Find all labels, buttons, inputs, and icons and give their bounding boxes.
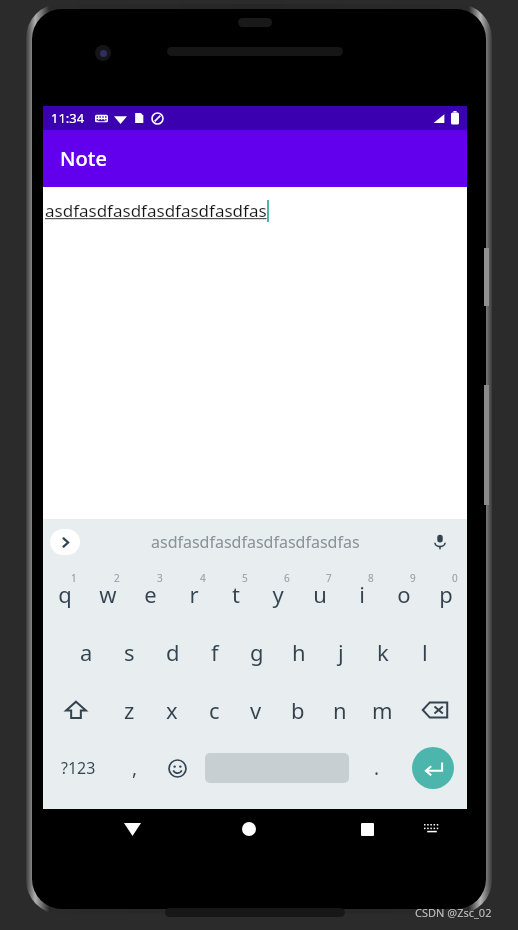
staticText: b (291, 695, 305, 725)
button[interactable]: h (278, 623, 320, 681)
button[interactable]: ?123 (43, 739, 113, 797)
button[interactable]: v (235, 681, 277, 739)
button[interactable]: b (277, 681, 319, 739)
staticText: k (377, 637, 389, 667)
staticText: 9 (410, 571, 416, 585)
button[interactable]: q (43, 565, 86, 623)
staticText: 4 (200, 571, 206, 585)
staticText: 8 (368, 571, 374, 585)
button[interactable]: Emoji (156, 739, 199, 797)
button[interactable]: Switch keyboard (417, 814, 447, 844)
staticText: s (124, 637, 135, 667)
button[interactable]: Expand suggestions (50, 529, 80, 555)
staticText: h (292, 637, 306, 667)
button[interactable]: g (236, 623, 278, 681)
staticText: g (250, 637, 264, 667)
staticText: c (209, 695, 220, 725)
button[interactable]: asdfasdfasdfasdfasdfasdfas (151, 531, 360, 553)
staticText: x (166, 695, 178, 725)
button[interactable]: o (383, 565, 425, 623)
staticText: 3 (157, 571, 163, 585)
button[interactable]: a (65, 623, 108, 681)
button[interactable]: Hide keyboard (115, 812, 149, 846)
staticText: r (189, 579, 199, 609)
button[interactable]: w (86, 565, 129, 623)
button[interactable]: p (425, 565, 467, 623)
staticText: t (232, 579, 240, 609)
staticText: z (124, 695, 135, 725)
staticText: 6 (284, 571, 290, 585)
staticText: 2 (114, 571, 120, 585)
button[interactable]: m (361, 681, 403, 739)
staticText: l (422, 637, 428, 667)
button[interactable]: z (108, 681, 151, 739)
button[interactable]: . (355, 739, 398, 797)
staticText: e (144, 579, 157, 609)
button[interactable]: j (320, 623, 362, 681)
button[interactable]: c (193, 681, 235, 739)
button[interactable]: i (341, 565, 383, 623)
button[interactable]: s (108, 623, 151, 681)
button[interactable]: Recents (350, 812, 384, 846)
staticText: 11:34 (51, 109, 85, 127)
staticText: o (397, 579, 411, 609)
staticText: CSDN @Zsc_02 (415, 905, 492, 920)
staticText: p (439, 579, 453, 609)
staticText: i (359, 579, 365, 609)
button[interactable]: y (257, 565, 299, 623)
staticText: d (166, 637, 180, 667)
staticText: m (372, 695, 393, 725)
staticText: y (272, 579, 284, 609)
button[interactable]: t (215, 565, 257, 623)
staticText: . (374, 755, 380, 781)
button[interactable]: Enter (398, 739, 467, 797)
staticText: ?123 (61, 757, 96, 779)
button[interactable]: f (194, 623, 236, 681)
staticText: j (338, 637, 344, 667)
staticText: Note (60, 145, 107, 172)
button[interactable]: e (129, 565, 172, 623)
button[interactable]: , (113, 739, 156, 797)
staticText: u (313, 579, 327, 609)
staticText: 1 (71, 571, 77, 585)
button[interactable]: n (319, 681, 361, 739)
button[interactable]: x (151, 681, 193, 739)
button[interactable]: k (362, 623, 404, 681)
staticText: asdfasdfasdfasdfasdfasdfas (45, 199, 267, 222)
staticText: n (333, 695, 347, 725)
button[interactable]: Backspace (403, 681, 467, 739)
staticText: a (80, 637, 93, 667)
button[interactable]: Home (232, 812, 266, 846)
staticText: 5 (242, 571, 248, 585)
button[interactable]: r (172, 565, 215, 623)
staticText: 0 (452, 571, 458, 585)
button[interactable]: Voice input (425, 527, 455, 557)
button[interactable]: d (151, 623, 194, 681)
staticText: q (58, 579, 72, 609)
button[interactable]: Shift (43, 681, 108, 739)
button[interactable]: Space (199, 739, 355, 797)
staticText: asdfasdfasdfasdfasdfasdfas (151, 531, 360, 553)
staticText: v (250, 695, 262, 725)
button[interactable]: u (299, 565, 341, 623)
button[interactable]: l (404, 623, 446, 681)
staticText: w (99, 579, 117, 609)
staticText: f (211, 637, 219, 667)
staticText: , (132, 755, 138, 781)
staticText: 7 (326, 571, 332, 585)
